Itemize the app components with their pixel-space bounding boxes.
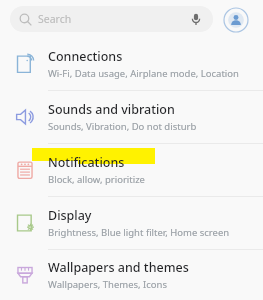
button[interactable]: Account bbox=[222, 6, 249, 33]
button[interactable]: Connections bbox=[0, 38, 263, 90]
staticText: Display bbox=[48, 207, 92, 224]
staticText: Wallpapers, Themes, Icons bbox=[48, 278, 168, 291]
staticText: Block, allow, prioritize bbox=[48, 173, 145, 186]
staticText: Wallpapers and themes bbox=[48, 259, 189, 276]
staticText: Notifications bbox=[48, 154, 125, 171]
staticText: Connections bbox=[48, 48, 123, 65]
staticText: Brightness, Blue light filter, Home scre… bbox=[48, 226, 230, 239]
button[interactable]: Sounds and vibration bbox=[0, 91, 263, 143]
staticText: Search bbox=[38, 12, 72, 26]
staticText: Wi-Fi, Data usage, Airplane mode, Locati… bbox=[48, 67, 239, 80]
staticText: Sounds and vibration bbox=[48, 101, 175, 118]
button[interactable]: Voice search bbox=[188, 11, 204, 27]
staticText: Sounds, Vibration, Do not disturb bbox=[48, 120, 197, 133]
button[interactable]: Notifications bbox=[0, 144, 263, 196]
button[interactable]: Display bbox=[0, 197, 263, 249]
button[interactable]: Wallpapers and themes bbox=[0, 250, 263, 300]
button[interactable]: Search bbox=[10, 6, 213, 32]
